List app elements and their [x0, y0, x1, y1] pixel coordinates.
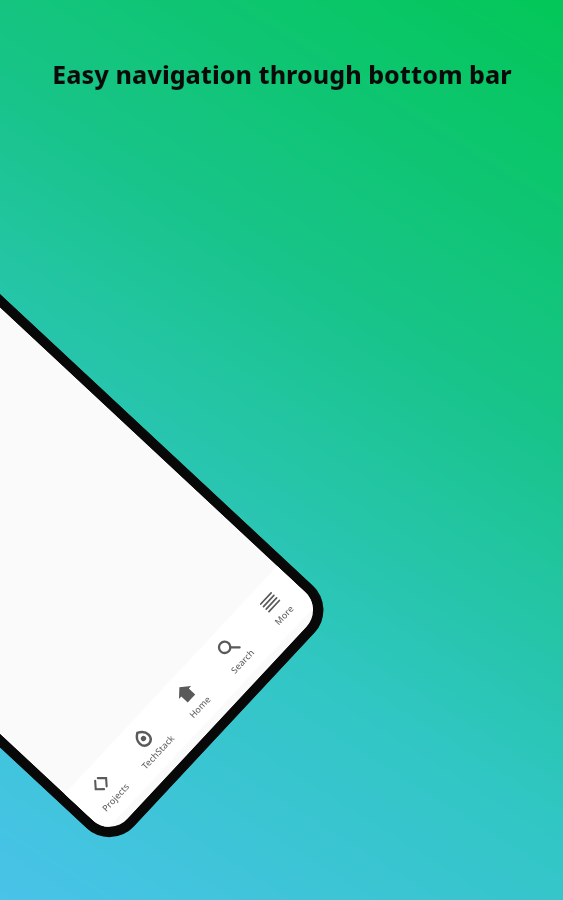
staticText: Home [186, 693, 213, 720]
button[interactable]: Home [154, 661, 228, 736]
staticText: Projects [99, 780, 131, 814]
staticText: More [271, 602, 296, 627]
staticText: TechStack [138, 732, 176, 771]
staticText: Easy navigation through bottom bar [45, 57, 519, 91]
staticText: Search [228, 646, 256, 676]
button[interactable]: Projects [69, 752, 143, 827]
button[interactable]: Search [196, 616, 270, 691]
button[interactable]: Tech Stack [112, 707, 186, 781]
button[interactable]: Features [0, 278, 1, 535]
button[interactable]: More [239, 571, 312, 645]
